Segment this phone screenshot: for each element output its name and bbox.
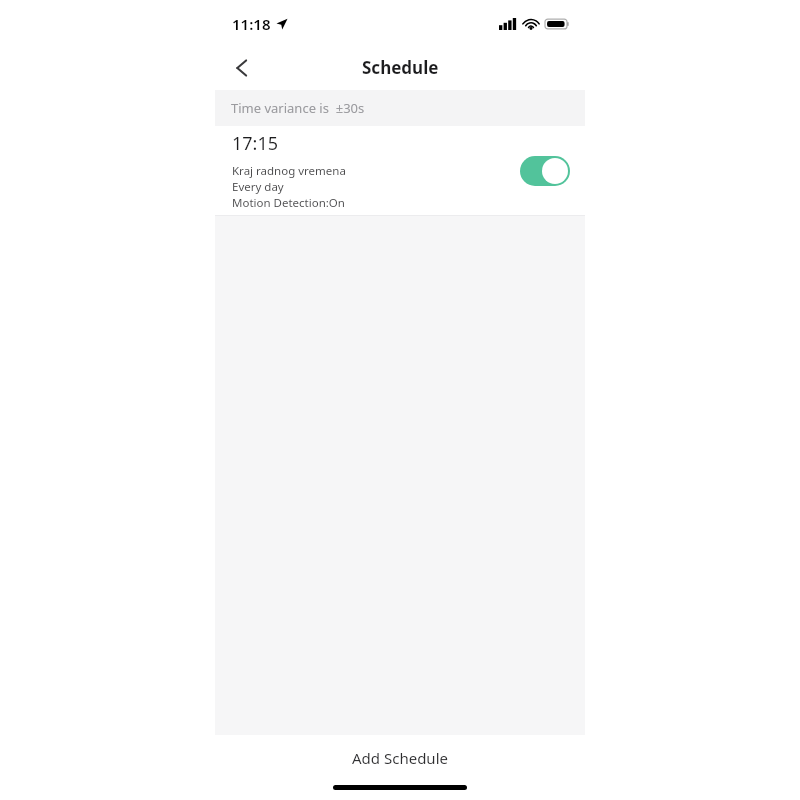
staticText: Add Schedule xyxy=(352,748,448,768)
staticText: Motion Detection:On xyxy=(232,195,345,211)
staticText: Kraj radnog vremena xyxy=(232,163,346,179)
staticText: Every day xyxy=(232,179,284,195)
button[interactable]: Schedule enabled toggle xyxy=(520,156,570,186)
staticText: Time variance is ±30s xyxy=(231,99,365,117)
staticText: Schedule xyxy=(362,56,439,79)
staticText: 11:18 xyxy=(232,14,271,34)
button[interactable]: Back xyxy=(223,50,259,86)
button[interactable]: Add Schedule xyxy=(215,735,585,780)
button[interactable]: 17:15 xyxy=(215,126,585,215)
staticText: 17:15 xyxy=(232,131,279,156)
